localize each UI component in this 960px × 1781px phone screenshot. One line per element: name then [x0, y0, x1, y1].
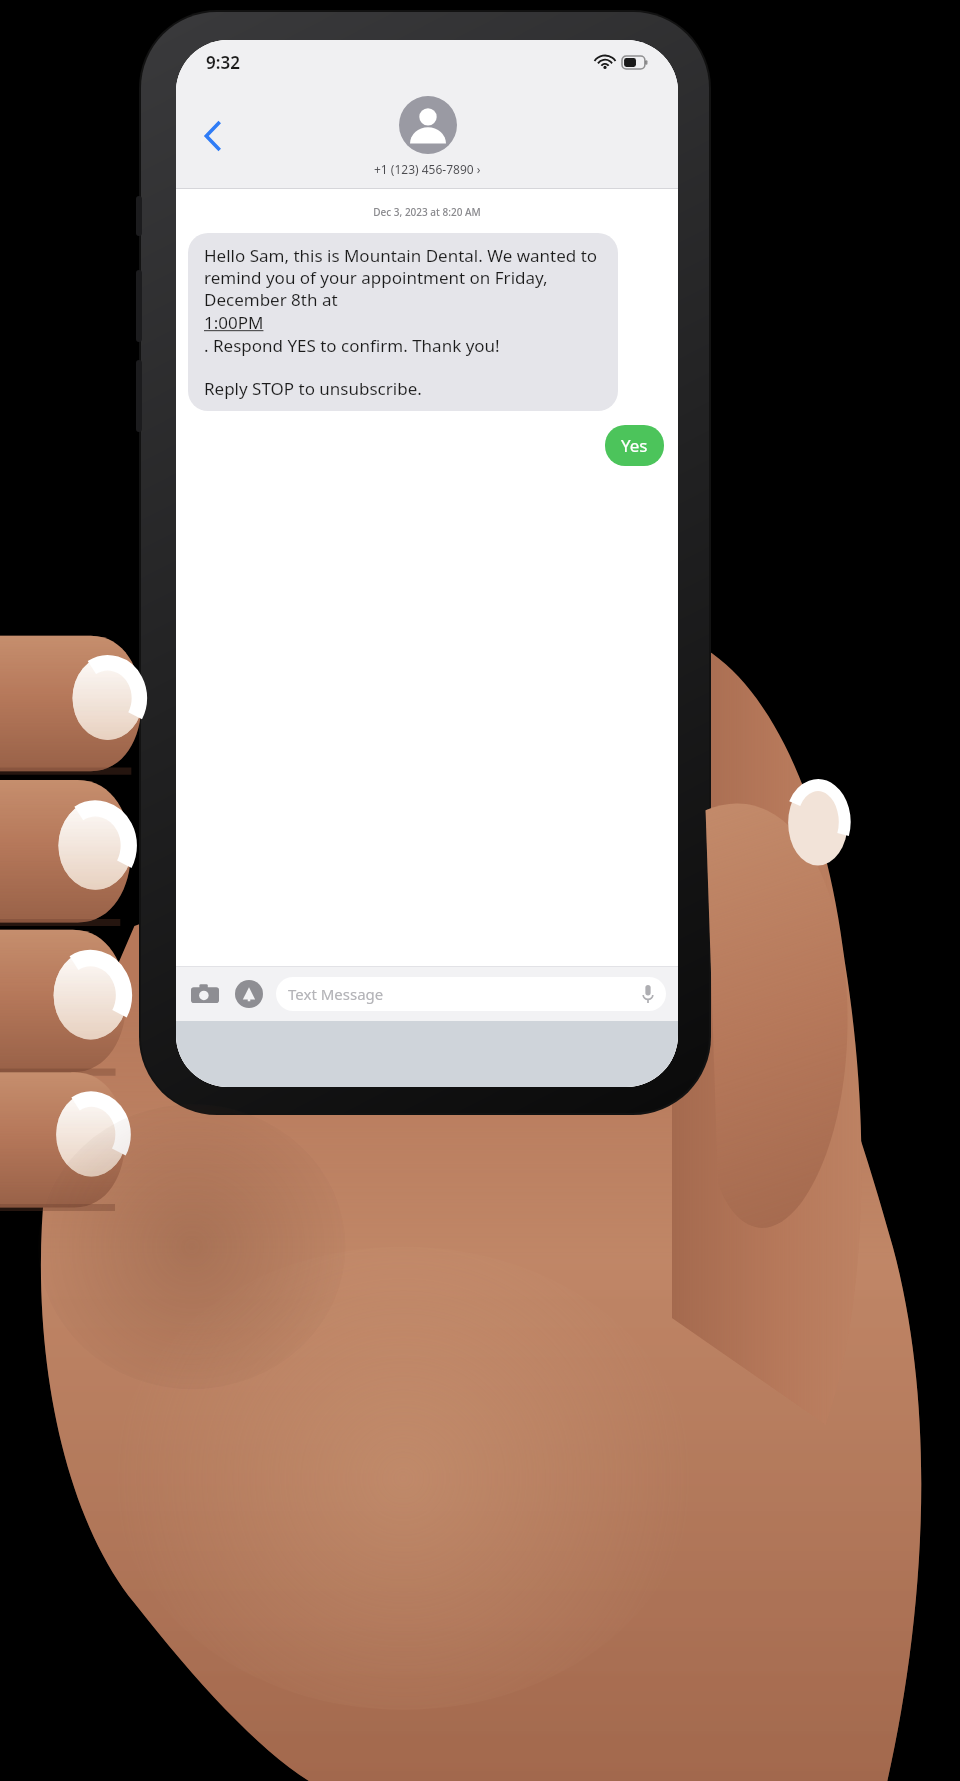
button[interactable]: +1 (123) 456-7890 ›: [374, 96, 481, 177]
staticText: Dec 3, 2023 at 8:20 AM: [176, 205, 678, 219]
button[interactable]: Back: [190, 113, 236, 159]
staticText: +1 (123) 456-7890 ›: [374, 161, 481, 177]
button[interactable]: Apps: [232, 977, 266, 1011]
staticText: Yes: [621, 434, 648, 457]
staticText: Hello Sam, this is Mountain Dental. We w…: [204, 244, 602, 311]
button[interactable]: Yes: [605, 425, 664, 466]
staticText: . Respond YES to confirm. Thank you!: [204, 334, 500, 357]
staticText: Text Message: [288, 984, 384, 1004]
button[interactable]: Hello Sam, this is Mountain Dental. We w…: [188, 233, 618, 411]
button[interactable]: Camera: [188, 977, 222, 1011]
staticText: 9:32: [206, 51, 240, 74]
button[interactable]: Text Message: [276, 977, 666, 1011]
staticText: Reply STOP to unsubscribe.: [204, 377, 422, 400]
staticText: 1:00PM: [204, 311, 264, 334]
